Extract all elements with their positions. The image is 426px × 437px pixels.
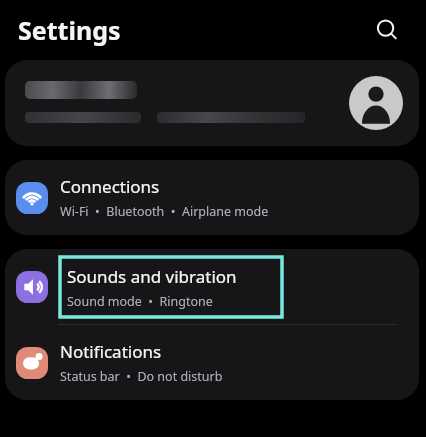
button[interactable]: Connections [5,160,419,235]
staticText: Status bar • Do not disturb [60,368,223,385]
staticText: Sounds and vibration [67,265,237,288]
button[interactable]: Search [368,11,406,49]
staticText: Connections [60,175,160,198]
staticText: Sound mode • Ringtone [67,293,213,310]
button[interactable]: Samsung account profile [5,60,419,146]
button[interactable]: Sounds and vibration [5,249,419,324]
staticText: Settings [18,13,121,47]
button[interactable]: Notifications [5,325,419,400]
staticText: Wi-Fi • Bluetooth • Airplane mode [60,203,269,220]
staticText: Notifications [60,340,162,363]
